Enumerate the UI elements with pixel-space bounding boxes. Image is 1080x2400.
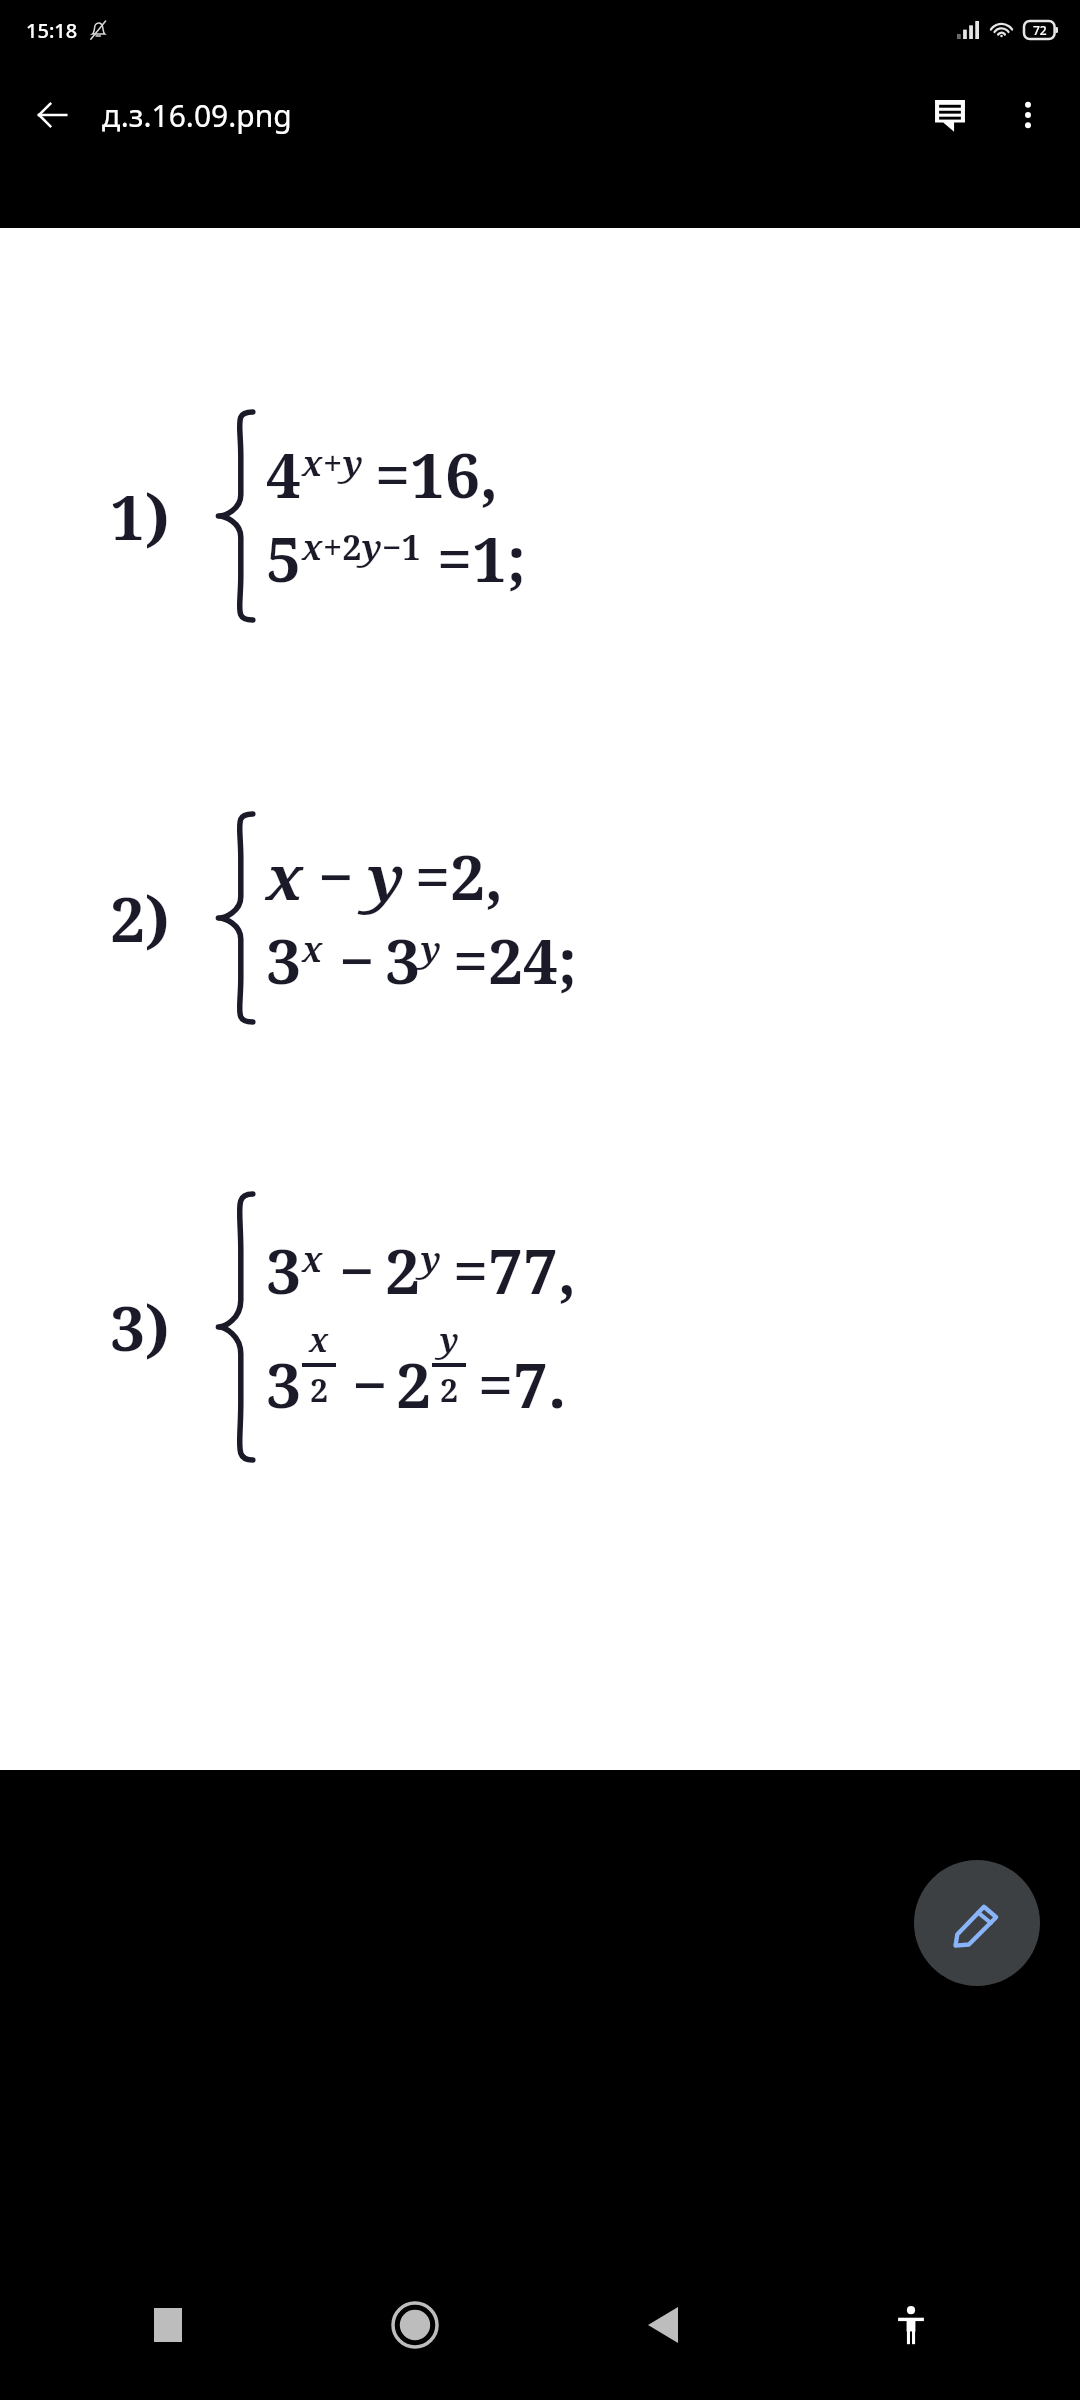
- staticText: −: [352, 1342, 388, 1426]
- staticText: −: [339, 918, 375, 1002]
- staticText: 15:18: [26, 17, 78, 44]
- staticText: x: [309, 1318, 329, 1362]
- staticText: +2: [323, 524, 362, 570]
- staticText: =2,: [415, 834, 504, 918]
- staticText: 3: [266, 918, 302, 1002]
- staticText: 2: [310, 1368, 329, 1412]
- button[interactable]: Home: [370, 2280, 460, 2370]
- staticText: =77,: [453, 1228, 577, 1312]
- staticText: +: [323, 440, 343, 486]
- staticText: 2: [396, 1342, 432, 1426]
- staticText: y: [343, 440, 363, 486]
- staticText: x: [302, 440, 323, 486]
- staticText: y: [362, 524, 382, 570]
- button[interactable]: 1): [0, 228, 1080, 1770]
- staticText: д.з.16.09.png: [102, 95, 922, 136]
- staticText: 3: [385, 918, 421, 1002]
- staticText: x: [302, 926, 323, 972]
- staticText: 3): [110, 1285, 170, 1369]
- button[interactable]: Comments: [922, 87, 978, 143]
- staticText: 2: [440, 1368, 459, 1412]
- staticText: y: [440, 1318, 459, 1362]
- staticText: x: [302, 1236, 323, 1282]
- staticText: 1): [110, 474, 170, 558]
- button[interactable]: Accessibility: [866, 2280, 956, 2370]
- staticText: 2): [110, 876, 170, 960]
- staticText: =16,: [375, 432, 499, 516]
- staticText: −: [318, 834, 354, 918]
- button[interactable]: Recents: [123, 2280, 213, 2370]
- staticText: y: [421, 1236, 441, 1282]
- button[interactable]: More options: [1000, 87, 1056, 143]
- button[interactable]: Back: [618, 2280, 708, 2370]
- button[interactable]: Edit: [914, 1860, 1040, 1986]
- button[interactable]: Back: [24, 87, 80, 143]
- staticText: 3: [266, 1228, 302, 1312]
- staticText: x: [266, 834, 304, 918]
- staticText: =1;: [437, 516, 526, 600]
- staticText: 4: [266, 432, 302, 516]
- staticText: y: [368, 834, 405, 918]
- staticText: −1: [382, 524, 421, 570]
- staticText: 5: [266, 516, 302, 600]
- staticText: =7.: [478, 1342, 567, 1426]
- staticText: y: [421, 926, 441, 972]
- staticText: 3: [266, 1342, 302, 1426]
- staticText: =24;: [453, 918, 577, 1002]
- staticText: 2: [385, 1228, 421, 1312]
- staticText: 72: [1033, 22, 1047, 38]
- staticText: x: [302, 524, 323, 570]
- staticText: −: [339, 1228, 375, 1312]
